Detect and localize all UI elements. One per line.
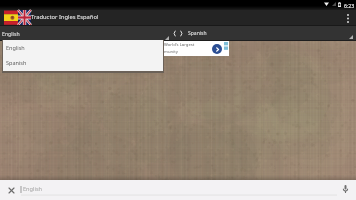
button[interactable]: Spanish [188,26,356,41]
button[interactable]: World's Largest [163,41,229,56]
button[interactable]: Swap languages [170,26,186,41]
staticText: Traductor Ingles Español [31,13,99,21]
staticText: Spanish [6,59,27,66]
staticText: World's Largest [164,42,195,48]
staticText: English [23,185,43,193]
staticText: English [2,30,20,37]
staticText: Spanish [188,30,207,37]
button[interactable]: English [21,182,337,196]
staticText: munity [164,49,178,55]
button[interactable]: Spanish [3,56,163,71]
staticText: 6:23 [344,2,355,9]
button[interactable]: English [3,40,163,56]
button[interactable]: More options [340,10,356,26]
staticText: English [6,44,25,51]
button[interactable]: English [0,26,170,41]
button[interactable]: Clear text [3,182,19,198]
button[interactable]: Voice input [337,181,353,197]
